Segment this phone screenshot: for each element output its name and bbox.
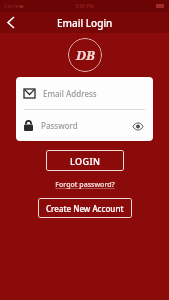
staticText: LOGIN — [70, 155, 101, 167]
button[interactable]: Email Address — [16, 77, 153, 109]
button[interactable]: Show password — [131, 119, 145, 133]
button[interactable]: Forgot password? — [51, 179, 119, 191]
staticText: DB — [76, 46, 95, 64]
button[interactable]: LOGIN — [46, 150, 124, 171]
button[interactable]: Back — [0, 12, 21, 33]
staticText: Email Login — [57, 16, 113, 30]
button[interactable]: Password — [16, 110, 153, 141]
staticText: 3:50 PM — [75, 3, 94, 10]
staticText: Carrier — [4, 3, 21, 10]
staticText: Create New Account — [46, 203, 124, 214]
staticText: Forgot password? — [55, 180, 115, 190]
staticText: Password — [41, 120, 78, 131]
staticText: Email Address — [43, 88, 97, 99]
button[interactable]: Create New Account — [38, 198, 132, 218]
